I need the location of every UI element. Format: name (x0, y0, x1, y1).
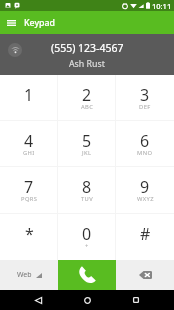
button[interactable]: 6 (116, 121, 174, 166)
staticText: 8 (82, 176, 92, 198)
staticText: 7 (24, 176, 34, 198)
staticText: 1 (24, 84, 34, 106)
button[interactable]: 2 (58, 75, 116, 120)
button[interactable]: Backspace (116, 260, 174, 290)
staticText: 10:11 (152, 1, 172, 11)
staticText: 0 (82, 223, 92, 245)
button[interactable]: 0 (58, 214, 116, 260)
staticText: * (25, 223, 34, 245)
staticText: PQRS (21, 195, 38, 203)
staticText: JKL (82, 149, 92, 157)
button[interactable]: 5 (58, 121, 116, 166)
staticText: TUV (81, 195, 94, 203)
staticText: WXYZ (137, 195, 154, 203)
button[interactable]: Back (26, 290, 50, 310)
staticText: MNO (137, 149, 153, 157)
button[interactable]: Home (75, 290, 99, 310)
button[interactable]: Wi-Fi calling (8, 43, 22, 57)
staticText: + (85, 242, 89, 250)
button[interactable]: # (116, 214, 174, 260)
staticText: GHI (23, 149, 35, 157)
staticText: Web (17, 270, 32, 280)
button[interactable]: Web (0, 260, 58, 290)
button[interactable]: 7 (0, 167, 58, 213)
button[interactable]: 4 (0, 121, 58, 166)
staticText: DEF (139, 103, 151, 111)
button[interactable]: Call (58, 260, 116, 290)
button[interactable]: 8 (58, 167, 116, 213)
button[interactable]: Open navigation drawer (3, 14, 20, 31)
staticText: 4 (24, 130, 34, 152)
staticText: 6 (140, 130, 150, 152)
staticText: Ash Rust (69, 58, 105, 70)
staticText: 2 (82, 84, 92, 106)
staticText: 9 (140, 176, 150, 198)
button[interactable]: 9 (116, 167, 174, 213)
button[interactable]: 3 (116, 75, 174, 120)
staticText: Keypad (24, 17, 56, 29)
button[interactable]: Recent apps (124, 290, 148, 310)
staticText: # (140, 223, 151, 245)
button[interactable]: * (0, 214, 58, 260)
staticText: 5 (82, 130, 92, 152)
staticText: ABC (81, 103, 94, 111)
staticText: 3 (140, 84, 150, 106)
button[interactable]: 1 (0, 75, 58, 120)
staticText: (555) 123-4567 (51, 41, 124, 55)
